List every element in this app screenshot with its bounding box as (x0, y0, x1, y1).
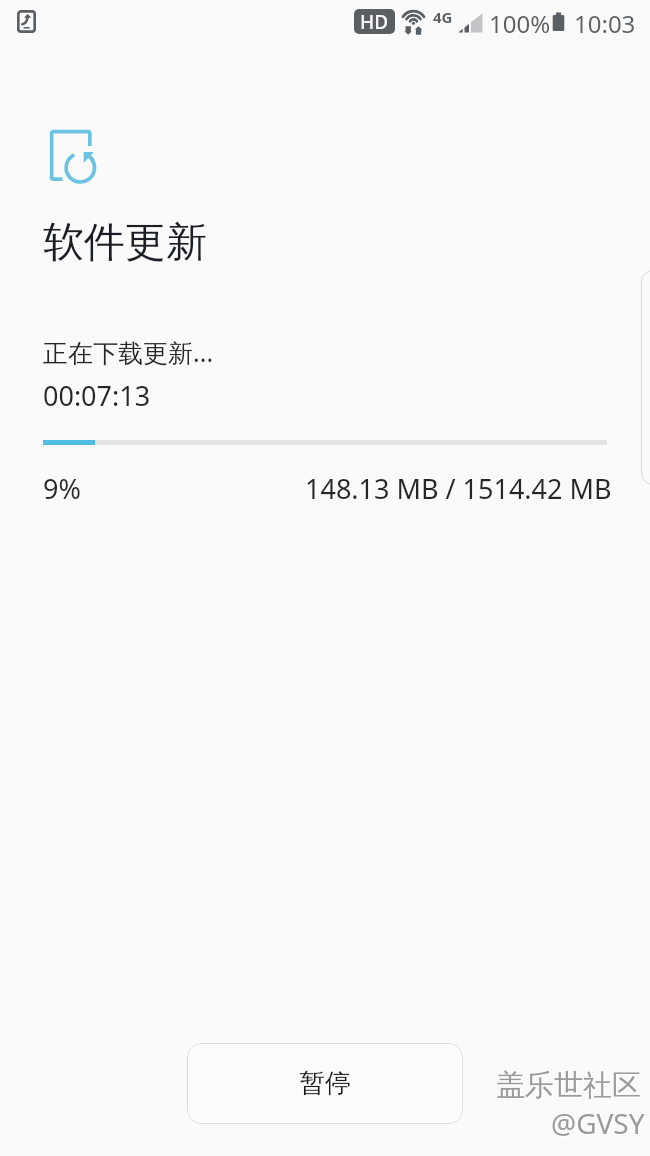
staticText: 盖乐世社区 (496, 1067, 641, 1104)
staticText: @GVSY (551, 1104, 645, 1142)
staticText: 软件更新 (43, 217, 207, 269)
staticText: 100% (489, 7, 551, 40)
staticText: @GVSY (552, 1105, 646, 1143)
staticText: 暂停 (299, 1067, 351, 1100)
staticText: 9% (43, 470, 81, 507)
staticText: 4G (433, 7, 453, 27)
staticText: 正在下载更新... (43, 335, 214, 369)
other: Smart stay (17, 10, 36, 33)
staticText: 148.13 MB / 1514.42 MB (305, 470, 612, 507)
staticText: HD (360, 9, 389, 34)
staticText: 00:07:13 (43, 377, 151, 414)
staticText: 10:03 (574, 7, 636, 40)
button[interactable]: 暂停 (187, 1043, 463, 1124)
staticText: 盖乐世社区 (497, 1068, 642, 1105)
